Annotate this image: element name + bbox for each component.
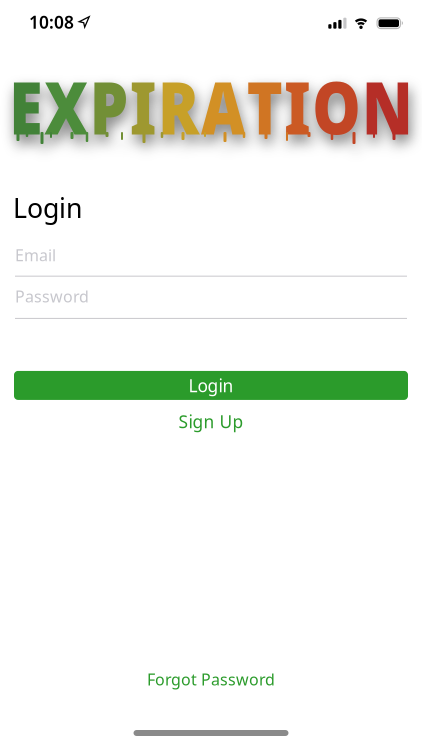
staticText: A (199, 57, 252, 155)
staticText: I (299, 57, 331, 155)
staticText (15, 286, 19, 307)
staticText: Login (188, 374, 233, 397)
staticText: T (254, 57, 297, 155)
staticText: Email (15, 244, 56, 266)
staticText: X (10, 57, 63, 155)
staticText: E (0, 57, 8, 155)
staticText: Forgot Password (147, 669, 275, 690)
secureTextField[interactable]: Password (15, 286, 407, 307)
staticText: Password (15, 286, 89, 307)
staticText: Sign Up (178, 410, 243, 433)
staticText: 10:08 (29, 10, 74, 33)
staticText (15, 244, 19, 266)
staticText: I (113, 57, 145, 155)
button[interactable]: Login (14, 371, 408, 400)
staticText: R (147, 57, 197, 155)
staticText: N (393, 57, 422, 155)
staticText: P (65, 57, 111, 155)
button[interactable]: Sign Up (178, 410, 243, 433)
button[interactable]: Forgot Password (147, 669, 275, 690)
staticText: O (333, 57, 391, 155)
textField[interactable]: Email (15, 244, 407, 266)
staticText: Login (13, 190, 82, 225)
